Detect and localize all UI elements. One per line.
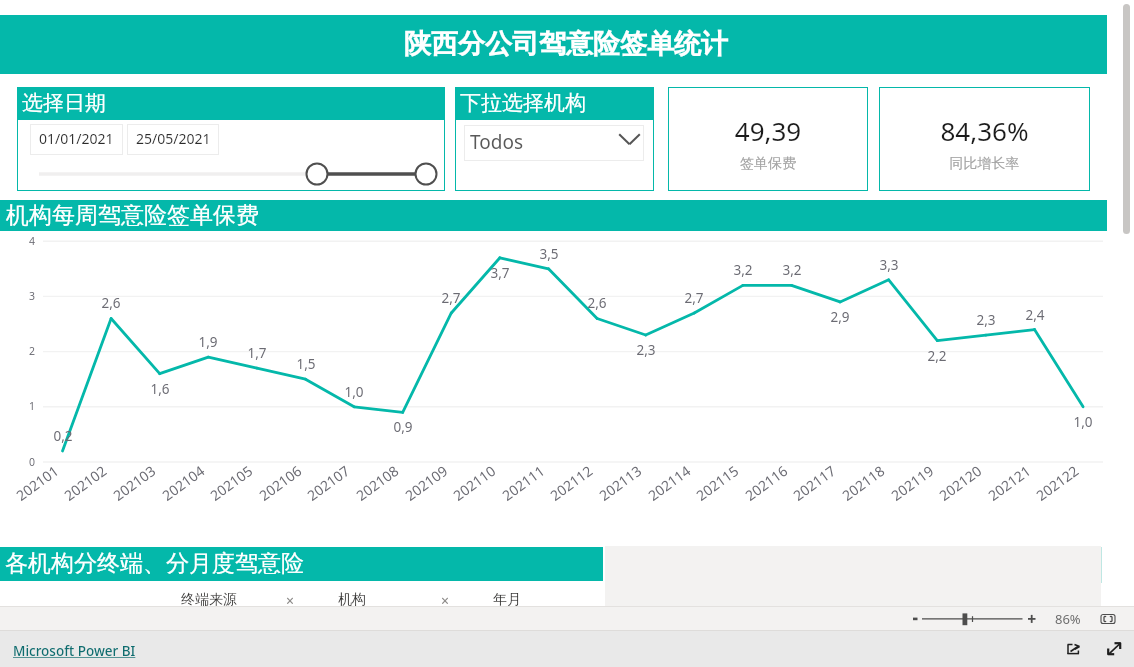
staticText: 1,6	[142, 380, 178, 398]
button[interactable]: Todos	[464, 125, 644, 161]
staticText: 202122	[1022, 461, 1081, 511]
staticText: 2,6	[93, 294, 129, 312]
staticText: 0,2	[45, 427, 81, 445]
button[interactable]: Share	[1065, 642, 1081, 656]
staticText: 202105	[196, 461, 255, 511]
staticText: 1,0	[1065, 413, 1101, 431]
staticText: 86%	[1055, 610, 1081, 628]
staticText: 202115	[682, 461, 741, 511]
staticText: 选择日期	[22, 90, 106, 116]
staticText: 202117	[779, 461, 838, 511]
staticText: 2,3	[628, 341, 664, 359]
staticText: Todos	[470, 129, 524, 155]
button[interactable]: 各机构分终端、分月度驾意险	[0, 547, 603, 582]
staticText: 2,3	[968, 311, 1004, 329]
staticText: 49,39	[668, 113, 868, 148]
staticText: 3,2	[774, 261, 810, 279]
staticText: 2,4	[1017, 306, 1053, 324]
staticText: 同比增长率	[879, 155, 1090, 173]
staticText: 2,7	[433, 289, 469, 307]
button[interactable]: 陕西分公司驾意险签单统计	[0, 15, 1107, 74]
button[interactable]: Full screen	[1106, 642, 1123, 657]
staticText: ×	[286, 591, 295, 610]
button[interactable]: Fit to page	[1099, 611, 1117, 627]
staticText: 终端来源	[181, 591, 237, 609]
button[interactable]: 84,36%	[879, 87, 1090, 191]
staticText: 25/05/2021	[136, 129, 211, 148]
staticText: 机构	[338, 591, 366, 609]
staticText: 202104	[148, 461, 207, 511]
staticText: 年月	[493, 591, 521, 609]
staticText: 202112	[536, 461, 595, 511]
staticText: 202101	[2, 461, 61, 511]
staticText: 202118	[828, 461, 887, 511]
staticText: 2	[27, 344, 37, 358]
button[interactable]: Microsoft Power BI	[13, 642, 136, 660]
staticText: 01/01/2021	[39, 129, 114, 148]
staticText: 2,2	[919, 347, 955, 365]
staticText: 下拉选择机构	[460, 90, 586, 116]
staticText: 3,7	[482, 264, 518, 282]
staticText: 202107	[293, 461, 352, 511]
staticText: 2,6	[579, 294, 615, 312]
staticText: 202113	[585, 461, 644, 511]
staticText: 签单保费	[668, 155, 868, 173]
staticText: 各机构分终端、分月度驾意险	[5, 549, 304, 578]
staticText: 202116	[731, 461, 790, 511]
staticText: 202120	[925, 461, 984, 511]
staticText: 1	[27, 399, 37, 413]
staticText: 202108	[342, 461, 401, 511]
staticText: 2,7	[676, 289, 712, 307]
staticText: 202121	[974, 461, 1033, 511]
staticText: 202119	[877, 461, 936, 511]
staticText: 202114	[634, 461, 693, 511]
staticText: 202109	[391, 461, 450, 511]
staticText: 3,2	[725, 261, 761, 279]
staticText: 0,9	[385, 418, 421, 436]
button[interactable]: 下拉选择机构	[455, 87, 654, 191]
staticText: 3	[27, 289, 37, 303]
staticText: 机构每周驾意险签单保费	[6, 201, 259, 230]
button[interactable]: 01/01/2021	[30, 124, 123, 155]
button[interactable]: 49,39	[668, 87, 868, 191]
staticText: 202111	[488, 461, 547, 511]
staticText: 1,9	[190, 333, 226, 351]
staticText: 1,5	[288, 355, 324, 373]
staticText: 2,9	[822, 308, 858, 326]
staticText: ×	[441, 591, 450, 610]
staticText: 0	[27, 455, 37, 469]
staticText: 3,5	[531, 245, 567, 263]
staticText: 4	[27, 234, 37, 248]
staticText: 陕西分公司驾意险签单统计	[404, 27, 728, 61]
staticText: 84,36%	[879, 113, 1090, 148]
staticText: 202110	[439, 461, 498, 511]
staticText: 202103	[99, 461, 158, 511]
button[interactable]: 25/05/2021	[127, 124, 219, 155]
staticText: 202106	[245, 461, 304, 511]
staticText: 1,0	[336, 383, 372, 401]
staticText: 3,3	[871, 256, 907, 274]
button[interactable]: 选择日期	[17, 87, 445, 191]
staticText: 1,7	[239, 344, 275, 362]
staticText: 202102	[50, 461, 109, 511]
button[interactable]: 机构每周驾意险签单保费	[0, 200, 1107, 231]
